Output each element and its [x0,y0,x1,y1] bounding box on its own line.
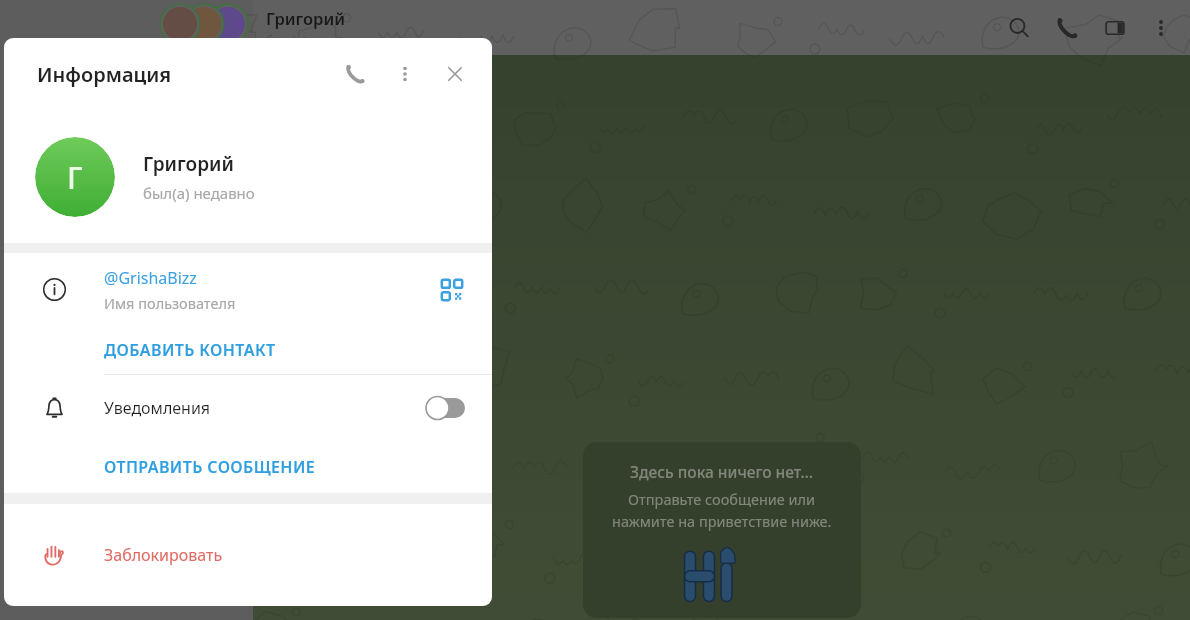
staticText: Г [67,157,83,198]
button[interactable]: More options [390,59,420,89]
button[interactable]: Call [340,59,370,89]
button[interactable]: Notifications toggle [425,395,467,421]
staticText: нажмите на приветствие ниже. [612,511,832,531]
button[interactable]: @GrishaBizz [4,253,492,326]
staticText: ОТПРАВИТЬ СООБЩЕНИЕ [104,456,316,478]
staticText: @GrishaBizz [104,267,197,289]
staticText: Имя пользователя [104,293,236,313]
staticText: Информация [37,61,172,88]
staticText: Здесь пока ничего нет… [630,461,814,482]
button[interactable]: More options [1148,15,1174,41]
staticText: Григорий [266,7,345,29]
staticText: Уведомления [104,397,425,419]
button[interactable]: ОТПРАВИТЬ СООБЩЕНИЕ [4,441,492,493]
staticText: Заблокировать [104,544,223,566]
button[interactable]: Уведомления [4,375,492,441]
button[interactable]: Close [440,59,470,89]
staticText: Отправьте сообщение или [628,489,816,509]
staticText: был(а) недавно [266,31,363,49]
staticText: Григорий [143,151,234,177]
button[interactable]: ДОБАВИТЬ КОНТАКТ [4,326,492,374]
button[interactable]: Toggle panel [1102,15,1128,41]
button[interactable]: Г [4,110,492,243]
button[interactable]: Call [1054,15,1080,41]
button[interactable]: Show QR code [437,275,467,305]
staticText: ДОБАВИТЬ КОНТАКТ [104,339,276,361]
button[interactable]: Заблокировать [4,504,492,606]
staticText: был(а) недавно [143,183,255,203]
button[interactable]: Search [1006,15,1032,41]
